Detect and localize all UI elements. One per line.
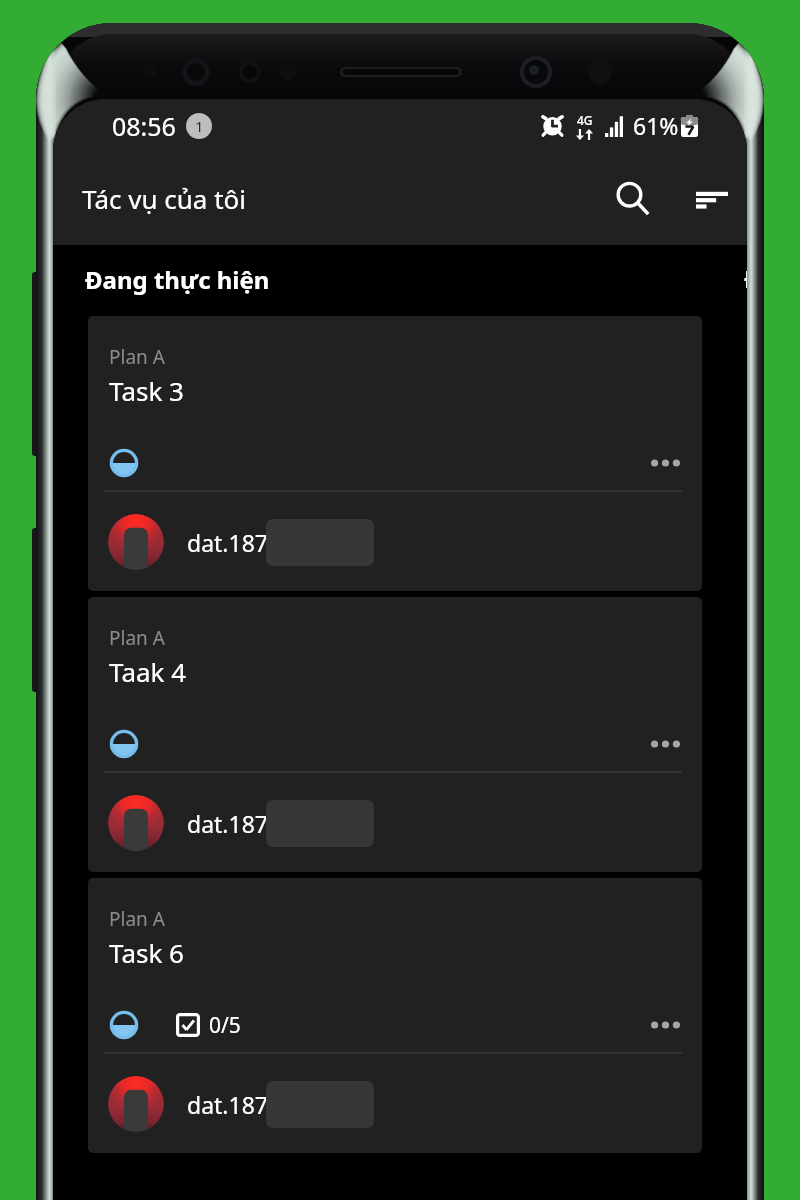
staticText: Plan A: [109, 344, 165, 370]
staticText: Taak 4: [109, 654, 187, 689]
staticText: dat.187: [187, 808, 268, 839]
button[interactable]: More options: [639, 1002, 691, 1048]
button[interactable]: Sort: [683, 170, 741, 228]
button[interactable]: Plan A: [88, 878, 702, 1153]
staticText: 61%: [633, 110, 679, 141]
button[interactable]: Plan A: [88, 316, 702, 591]
staticText: Plan A: [109, 625, 165, 651]
staticText: Task 6: [109, 935, 184, 970]
button[interactable]: Plan A: [88, 597, 702, 872]
staticText: Đang thực hiện: [85, 263, 270, 296]
button[interactable]: More options: [639, 440, 691, 486]
staticText: 1: [195, 116, 204, 136]
staticText: 0/5: [209, 1011, 241, 1040]
staticText: dat.187: [187, 1089, 268, 1120]
staticText: dat.187: [187, 527, 268, 558]
staticText: Task 3: [109, 373, 184, 408]
staticText: 08:56: [112, 109, 176, 143]
staticText: 4G: [577, 112, 593, 128]
staticText: Tác vụ của tôi: [82, 181, 246, 216]
button[interactable]: More options: [639, 721, 691, 767]
staticText: Plan A: [109, 906, 165, 932]
button[interactable]: Search: [603, 170, 661, 228]
staticText: Đã xong: [744, 262, 747, 295]
